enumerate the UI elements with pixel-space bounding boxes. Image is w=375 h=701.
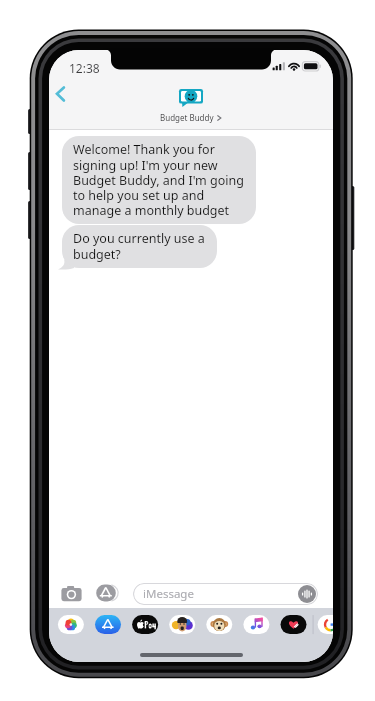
button[interactable]: Back bbox=[50, 80, 80, 110]
button[interactable]: App store bbox=[95, 584, 121, 605]
staticText: Do you currently use a budget? bbox=[73, 230, 206, 263]
staticText: iMessage bbox=[143, 586, 194, 602]
button[interactable]: Camera bbox=[59, 584, 83, 603]
staticText: Budget Buddy bbox=[160, 112, 214, 123]
button[interactable]: Budget Buddy bbox=[154, 89, 228, 123]
staticText: 12:38 bbox=[69, 60, 100, 76]
button[interactable]: iMessage bbox=[133, 583, 318, 605]
button[interactable]: Do you currently use a budget? bbox=[62, 225, 217, 268]
button[interactable]: Record audio message bbox=[298, 585, 316, 603]
button[interactable]: Welcome! Thank you for signing up! I'm y… bbox=[62, 136, 256, 224]
staticText: Welcome! Thank you for signing up! I'm y… bbox=[73, 141, 245, 219]
